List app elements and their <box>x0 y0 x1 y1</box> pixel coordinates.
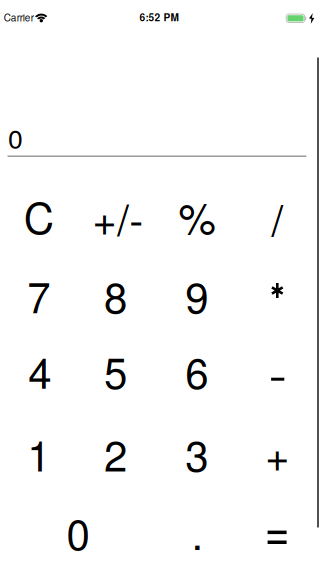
button[interactable]: 3 <box>185 423 208 483</box>
staticText: 6:52 PM <box>139 10 178 24</box>
button[interactable]: 9 <box>185 265 208 325</box>
button[interactable]: - <box>271 378 284 381</box>
staticText: 8 <box>104 265 127 325</box>
staticText: 7 <box>27 265 50 325</box>
staticText: 5 <box>104 340 127 400</box>
button[interactable]: 5 <box>104 340 127 400</box>
staticText: % <box>178 186 215 246</box>
staticText: 0 <box>66 502 89 562</box>
staticText: 1 <box>27 423 50 483</box>
staticText: . <box>192 502 204 562</box>
button[interactable]: * <box>270 283 284 298</box>
button[interactable]: 2 <box>104 423 127 483</box>
button[interactable]: % <box>178 186 215 246</box>
staticText: 4 <box>28 340 51 400</box>
button[interactable]: +/- <box>92 187 143 247</box>
staticText: C <box>24 186 54 246</box>
staticText: 0 <box>8 118 23 156</box>
staticText: 9 <box>185 265 208 325</box>
staticText: 3 <box>185 423 208 483</box>
button[interactable]: 7 <box>27 265 50 325</box>
staticText: Carrier <box>4 10 34 24</box>
button[interactable]: 0 <box>66 502 89 562</box>
button[interactable]: / <box>272 188 284 248</box>
staticText: 6 <box>185 340 208 400</box>
staticText: / <box>272 188 284 248</box>
staticText: +/- <box>92 187 143 247</box>
staticText: 2 <box>104 423 127 483</box>
button[interactable]: + <box>265 423 290 483</box>
button[interactable]: = <box>267 530 287 545</box>
button[interactable]: 6 <box>185 340 208 400</box>
button[interactable]: C <box>24 186 54 246</box>
button[interactable]: 8 <box>104 265 127 325</box>
button[interactable]: . <box>192 502 204 562</box>
staticText: + <box>265 423 290 483</box>
button[interactable]: 4 <box>28 340 51 400</box>
button[interactable]: 1 <box>27 423 50 483</box>
